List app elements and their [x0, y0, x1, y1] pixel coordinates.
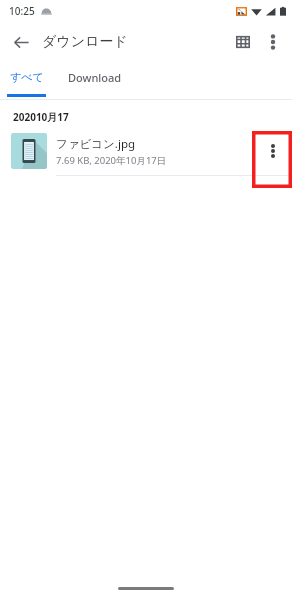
staticText: 7.69 KB, 2020年10月17日 — [56, 154, 167, 167]
staticText: 10:25 — [9, 4, 35, 18]
button[interactable]: すべて — [0, 62, 52, 99]
button[interactable]: Download — [52, 62, 138, 99]
button[interactable]: More options — [258, 27, 288, 57]
staticText: ファビコン.jpg — [56, 136, 136, 152]
button[interactable]: Grid view — [228, 27, 258, 57]
staticText: すべて — [10, 70, 44, 84]
button[interactable]: Back — [6, 27, 36, 57]
button[interactable]: ファビコン.jpg — [0, 127, 292, 175]
staticText: ダウンロード — [42, 33, 128, 51]
staticText: Download — [68, 70, 122, 85]
staticText: 202010月17 — [13, 110, 69, 124]
button[interactable]: More options for ファビコン.jpg — [254, 127, 292, 175]
